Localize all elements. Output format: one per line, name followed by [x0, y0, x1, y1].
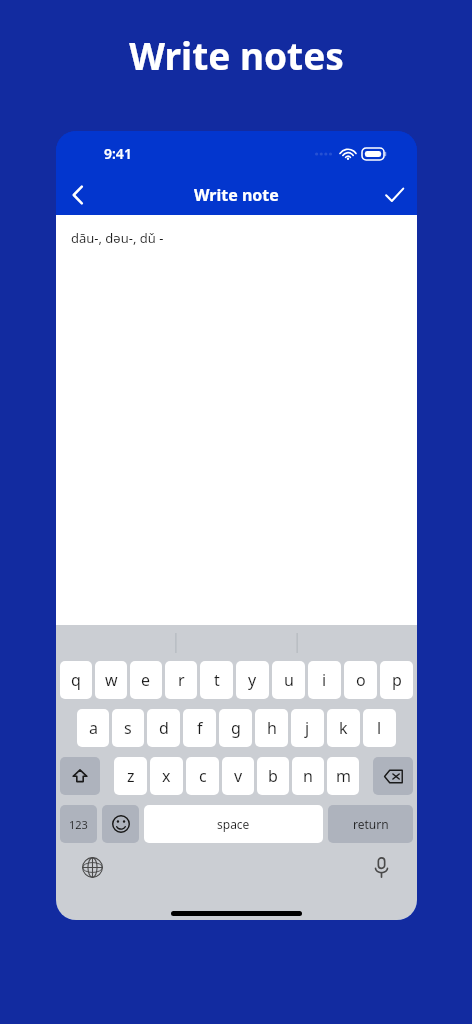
staticText: s: [124, 717, 132, 739]
button[interactable]: q: [60, 661, 92, 699]
button[interactable]: v: [222, 757, 254, 795]
button[interactable]: l: [363, 709, 396, 747]
staticText: n: [303, 765, 313, 787]
staticText: z: [127, 765, 135, 787]
staticText: o: [356, 669, 366, 691]
button[interactable]: 123: [60, 805, 97, 843]
staticText: Write note: [194, 184, 279, 206]
staticText: m: [336, 765, 351, 787]
button[interactable]: g: [219, 709, 252, 747]
staticText: b: [268, 765, 278, 787]
button[interactable]: Shift: [60, 757, 100, 795]
button[interactable]: z: [114, 757, 147, 795]
button[interactable]: Emoji: [102, 805, 139, 843]
staticText: k: [339, 717, 348, 739]
button[interactable]: Save note: [371, 174, 417, 215]
button[interactable]: i: [308, 661, 341, 699]
button[interactable]: s: [112, 709, 144, 747]
button[interactable]: w: [95, 661, 127, 699]
staticText: c: [199, 765, 207, 787]
button[interactable]: j: [291, 709, 324, 747]
staticText: i: [322, 669, 327, 691]
button[interactable]: f: [183, 709, 216, 747]
button[interactable]: o: [344, 661, 377, 699]
staticText: l: [377, 717, 382, 739]
button[interactable]: return: [328, 805, 413, 843]
button[interactable]: t: [200, 661, 233, 699]
staticText: q: [71, 669, 81, 691]
button[interactable]: n: [292, 757, 324, 795]
staticText: e: [141, 669, 151, 691]
button[interactable]: d: [147, 709, 180, 747]
button[interactable]: space: [144, 805, 323, 843]
staticText: r: [178, 669, 185, 691]
button[interactable]: y: [236, 661, 269, 699]
staticText: g: [231, 717, 241, 739]
staticText: t: [214, 669, 220, 691]
button[interactable]: a: [77, 709, 109, 747]
button[interactable]: Back: [56, 174, 100, 215]
staticText: dāu-, dəu-, dǔ -: [71, 229, 164, 247]
button[interactable]: Dictation: [367, 853, 395, 881]
button[interactable]: e: [130, 661, 162, 699]
button[interactable]: Change keyboard language: [78, 853, 106, 881]
button[interactable]: k: [327, 709, 360, 747]
staticText: Write notes: [129, 30, 344, 80]
staticText: y: [248, 669, 257, 691]
button[interactable]: Backspace: [373, 757, 413, 795]
staticText: return: [353, 816, 389, 832]
button[interactable]: b: [257, 757, 289, 795]
button[interactable]: h: [255, 709, 288, 747]
button[interactable]: u: [272, 661, 305, 699]
staticText: 9:41: [104, 144, 132, 163]
staticText: f: [197, 717, 203, 739]
button[interactable]: r: [165, 661, 197, 699]
staticText: d: [159, 717, 169, 739]
staticText: w: [105, 669, 118, 691]
button[interactable]: m: [327, 757, 359, 795]
staticText: 123: [69, 817, 88, 832]
staticText: v: [234, 765, 243, 787]
staticText: h: [267, 717, 277, 739]
button[interactable]: p: [380, 661, 413, 699]
staticText: u: [284, 669, 294, 691]
button[interactable]: x: [150, 757, 183, 795]
button[interactable]: dāu-, dəu-, dǔ -: [56, 215, 417, 625]
button[interactable]: c: [186, 757, 219, 795]
staticText: x: [162, 765, 171, 787]
staticText: p: [392, 669, 402, 691]
staticText: j: [305, 717, 310, 739]
staticText: space: [217, 816, 250, 832]
staticText: a: [89, 717, 98, 739]
